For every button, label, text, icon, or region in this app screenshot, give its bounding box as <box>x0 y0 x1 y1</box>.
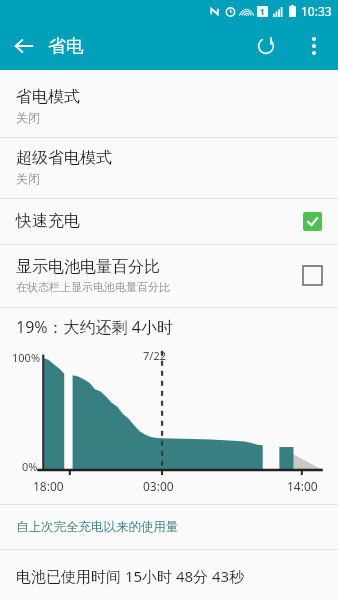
button[interactable]: Refresh <box>242 22 290 70</box>
staticText: 100% <box>12 350 41 365</box>
staticText: 快速充电 <box>16 211 80 231</box>
staticText: 关闭 <box>16 110 40 125</box>
button[interactable]: 自上次完全充电以来的使用量 <box>0 505 338 549</box>
staticText: 显示电池电量百分比 <box>16 257 160 277</box>
staticText: 省电模式 <box>16 87 80 107</box>
staticText: 1 <box>260 6 265 17</box>
staticText: 省电 <box>48 35 84 58</box>
staticText: 0% <box>22 459 38 474</box>
staticText: 关闭 <box>16 171 40 186</box>
staticText: 超级省电模式 <box>16 148 112 168</box>
staticText: 14:00 <box>287 478 318 494</box>
staticText: 10:33 <box>301 3 332 19</box>
staticText: 03:00 <box>143 478 174 494</box>
button[interactable]: 超级省电模式 <box>0 138 338 198</box>
staticText: 7/22 <box>143 348 166 363</box>
button[interactable]: 显示电池电量百分比 <box>0 245 338 307</box>
staticText: 自上次完全充电以来的使用量 <box>16 519 179 535</box>
staticText: 电池已使用时间 15小时 48分 43秒 <box>16 566 245 586</box>
button[interactable]: Back <box>0 22 48 70</box>
staticText: 在状态栏上显示电池电量百分比 <box>16 280 170 294</box>
button[interactable]: More options <box>290 22 338 70</box>
button[interactable]: 省电模式 <box>0 77 338 137</box>
staticText: 19%：大约还剩 4小时 <box>16 316 173 338</box>
button[interactable]: 快速充电 <box>0 199 338 244</box>
staticText: 18:00 <box>33 478 64 494</box>
